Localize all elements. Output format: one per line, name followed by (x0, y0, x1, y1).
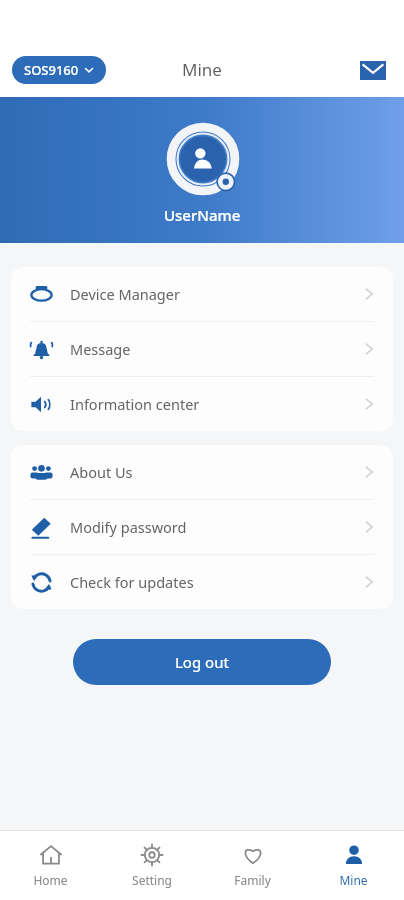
button[interactable]: Modify password (11, 500, 393, 554)
staticText: Home (33, 872, 68, 888)
staticText: Message (70, 339, 131, 359)
staticText: Check for updates (70, 572, 194, 592)
button[interactable]: Check for updates (11, 555, 393, 609)
button[interactable]: About Us (11, 445, 393, 499)
staticText: Setting (132, 872, 172, 888)
staticText: Modify password (70, 517, 187, 537)
staticText: Information center (70, 394, 200, 414)
staticText: Mine (339, 872, 368, 888)
staticText: SOS9160 (24, 61, 79, 79)
button[interactable]: Setting (101, 831, 202, 900)
button[interactable]: Profile photo (165, 121, 241, 197)
button[interactable]: Mine (303, 831, 404, 900)
staticText: Log out (175, 652, 229, 672)
staticText: About Us (70, 462, 133, 482)
staticText: Device Manager (70, 284, 180, 304)
button[interactable]: Log out (73, 639, 331, 685)
staticText: Mine (182, 58, 222, 81)
button[interactable]: Device Manager (11, 267, 393, 321)
button[interactable]: Information center (11, 377, 393, 431)
button[interactable]: Message (11, 322, 393, 376)
staticText: Family (234, 872, 271, 888)
button[interactable]: SOS9160 (12, 56, 106, 84)
button[interactable]: Home (0, 831, 101, 900)
button[interactable]: Family (202, 831, 303, 900)
staticText: UserName (164, 205, 241, 225)
button[interactable]: Messages (356, 53, 390, 87)
